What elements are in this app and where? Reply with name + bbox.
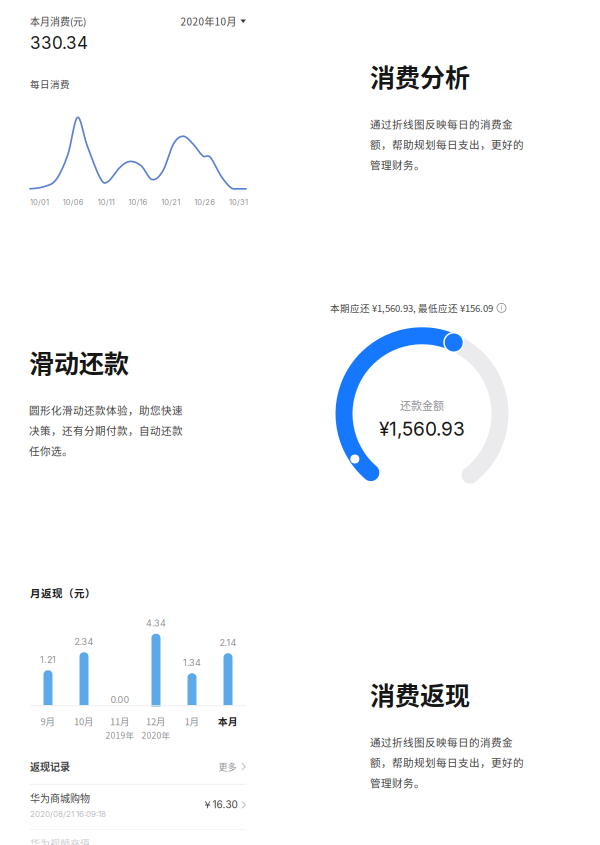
staticText: 华为视频充值	[30, 836, 90, 845]
staticText: 每日消费	[30, 77, 70, 91]
staticText: 2.34	[74, 636, 93, 647]
staticText: 华为商城购物	[30, 791, 90, 805]
staticText: 10月	[74, 714, 94, 728]
staticText: 10/21	[161, 198, 180, 207]
staticText: 圆形化滑动还款体验，助您快速决策，还有分期付款，自动还款任你选。	[29, 402, 183, 458]
staticText: 0.00	[110, 694, 129, 705]
staticText: 2020/08/21 16:09:18	[30, 809, 106, 819]
staticText: 通过折线图反映每日的消费金额，帮助规划每日支出，更好的管理财务。	[370, 116, 524, 172]
staticText: 1.21	[40, 654, 56, 665]
staticText: 10/11	[98, 198, 115, 207]
staticText: 10/26	[194, 198, 215, 207]
staticText: 9月	[40, 714, 55, 728]
staticText: 4.34	[146, 618, 166, 629]
staticText: 更多	[218, 760, 236, 773]
staticText: 本期应还 ¥1,560.93, 最低应还 ¥156.09	[330, 301, 493, 315]
staticText: 2020年10月	[180, 14, 236, 28]
button[interactable]: Adjust repayment amount	[330, 327, 514, 511]
staticText: 10/16	[128, 198, 147, 207]
staticText: 11月	[110, 714, 130, 728]
button[interactable]: 华为视频充值	[30, 836, 246, 845]
staticText: 10/31	[229, 198, 248, 207]
staticText: 返现记录	[30, 759, 70, 774]
staticText: 消费分析	[370, 58, 470, 94]
staticText: 消费返现	[370, 676, 470, 712]
staticText: ¥1,560.93	[379, 417, 465, 440]
staticText: i	[500, 304, 502, 312]
staticText: 330.34	[30, 32, 88, 53]
staticText: 月返现（元）	[30, 585, 96, 600]
staticText: 滑动还款	[29, 344, 129, 380]
staticText: 通过折线图反映每日的消费金额，帮助规划每日支出，更好的管理财务。	[370, 734, 524, 790]
staticText: 2.14	[219, 637, 236, 648]
button[interactable]: 2020年10月	[180, 14, 246, 28]
staticText: 2019年	[105, 729, 134, 741]
button[interactable]: 更多	[218, 760, 246, 773]
staticText: 10/01	[30, 198, 49, 207]
staticText: 本月	[218, 714, 238, 728]
staticText: 1.34	[183, 657, 201, 668]
staticText: 12月	[146, 714, 166, 728]
staticText: ￥16.30	[202, 798, 237, 811]
staticText: 10/06	[63, 198, 84, 207]
button[interactable]: 华为商城购物	[30, 791, 246, 819]
staticText: 1月	[184, 714, 199, 728]
staticText: 本月消费(元)	[30, 14, 86, 28]
staticText: 还款金额	[400, 397, 444, 413]
staticText: 2020年	[141, 729, 170, 741]
